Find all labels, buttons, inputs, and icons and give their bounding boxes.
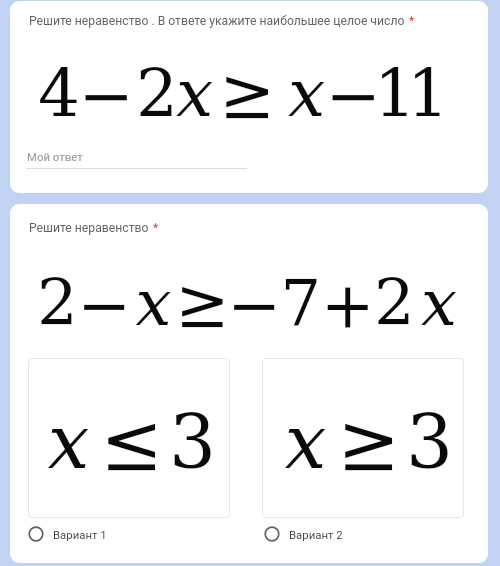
staticText: * [409,14,415,28]
staticText: Вариант 1 [53,528,107,541]
staticText: 4 [38,64,80,130]
button[interactable]: 𝑥≤3 [28,358,230,518]
staticText: 2 [136,64,178,130]
staticText: Решите неравенство [29,221,149,235]
staticText: 𝑥 [171,64,218,130]
button[interactable]: Вариант 2 [264,520,472,548]
staticText: 𝑥≤3 [42,409,225,483]
staticText: − [80,64,133,130]
staticText: 𝑥 [283,64,330,130]
button[interactable]: 𝑥≥3 [262,358,464,518]
staticText: 1 [374,64,416,130]
staticText: Мой ответ [27,150,83,163]
staticText: Решите неравенство . В ответе укажите на… [29,14,405,28]
staticText: Вариант 2 [289,528,343,541]
staticText: 2−𝑥≥−7+2𝑥 [37,274,463,338]
button[interactable]: Вариант 1 [28,520,236,548]
staticText: − [327,64,380,130]
staticText: 𝑥≥3 [279,409,462,483]
staticText: 1 [407,64,449,130]
button[interactable]: Мой ответ [26,150,247,169]
staticText: * [153,221,159,235]
staticText: ≥ [221,64,274,130]
